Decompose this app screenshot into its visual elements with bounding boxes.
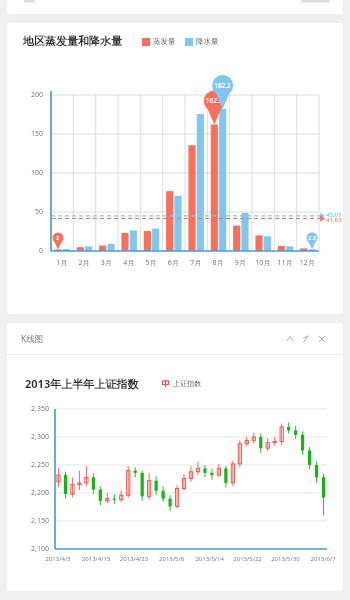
button[interactable]: 上证指数 — [161, 379, 201, 388]
staticText: 蒸发量 — [153, 37, 176, 46]
button[interactable]: 降水量 — [185, 37, 219, 46]
button[interactable]: 蒸发量 — [142, 37, 176, 46]
button[interactable]: 地区蒸发量和降水量 — [7, 23, 343, 314]
staticText: 2013年上半年上证指数 — [25, 376, 139, 391]
button[interactable]: Collapse — [283, 332, 297, 346]
staticText: K线图 — [21, 333, 44, 345]
button[interactable]: Refresh — [299, 332, 313, 346]
staticText: 降水量 — [196, 37, 219, 46]
button[interactable] — [7, 0, 343, 14]
staticText: 地区蒸发量和降水量 — [23, 34, 122, 48]
button[interactable]: Close — [315, 332, 329, 346]
staticText: 上证指数 — [173, 379, 201, 388]
